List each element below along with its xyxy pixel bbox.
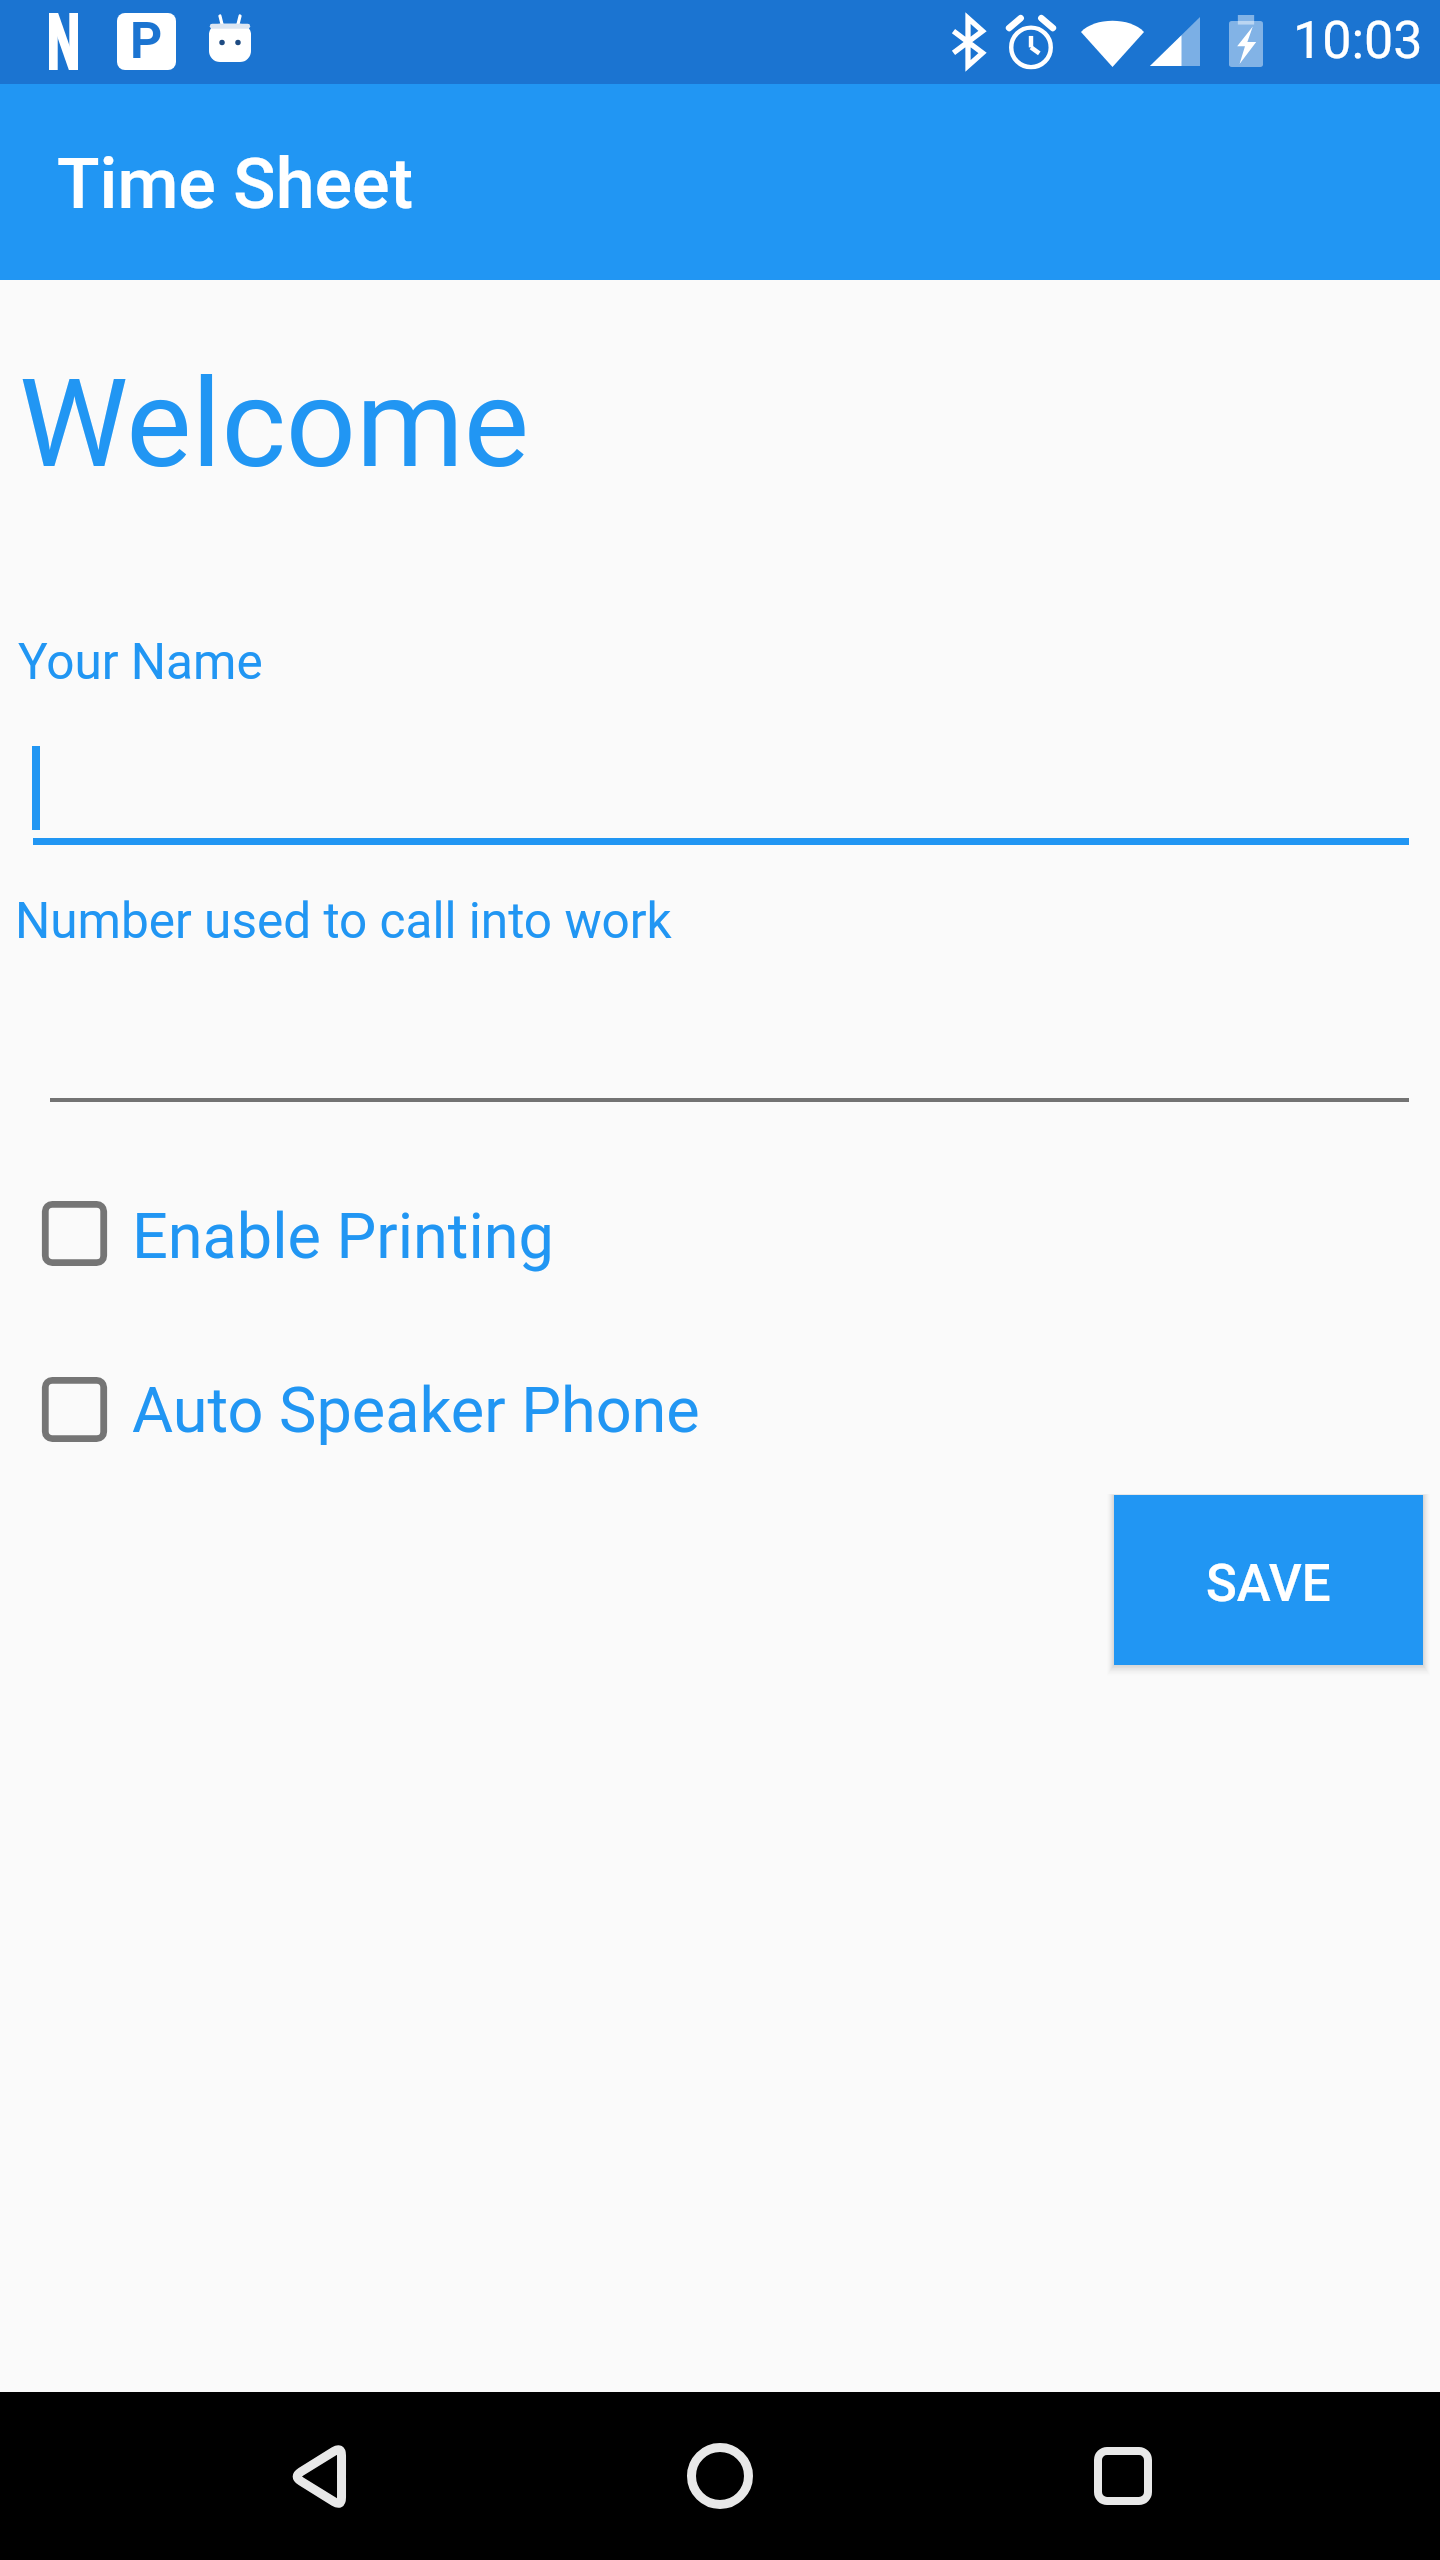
staticText: Welcome — [19, 352, 530, 496]
staticText: Enable Printing — [132, 1200, 554, 1274]
staticText: P — [130, 13, 163, 69]
staticText: Number used to call into work — [15, 892, 672, 950]
button[interactable]: Home — [635, 2392, 805, 2560]
button[interactable]: Enable Printing — [0, 1173, 1440, 1293]
staticText: 10:03 — [1293, 10, 1423, 71]
button[interactable]: SAVE — [1114, 1495, 1423, 1665]
button[interactable]: Back — [233, 2392, 403, 2560]
button[interactable]: Auto Speaker Phone — [0, 1349, 1440, 1469]
staticText: SAVE — [1206, 1554, 1331, 1614]
staticText: Your Name — [18, 633, 263, 691]
staticText: Time Sheet — [57, 143, 413, 225]
button[interactable]: Your Name text field — [24, 736, 1416, 852]
button[interactable]: Recents — [1038, 2392, 1208, 2560]
staticText: Auto Speaker Phone — [132, 1374, 700, 1448]
